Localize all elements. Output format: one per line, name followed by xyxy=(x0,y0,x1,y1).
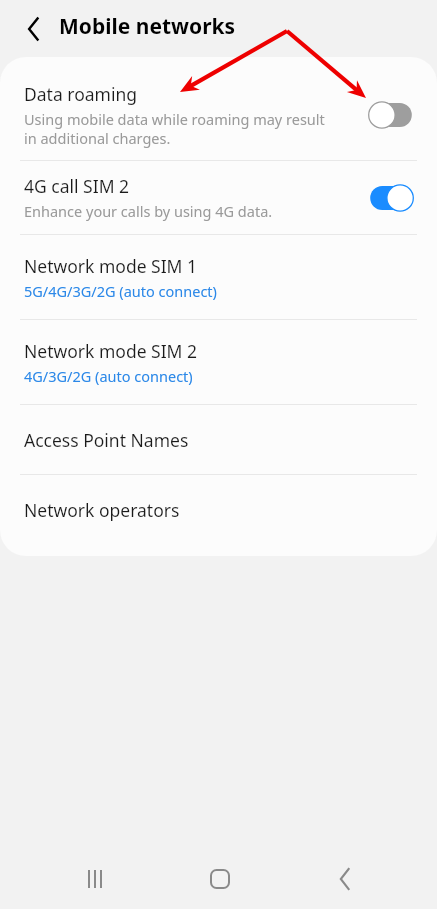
button[interactable]: Network operators xyxy=(0,475,437,544)
staticText: 4G call SIM 2 xyxy=(24,174,130,198)
button[interactable]: Back xyxy=(12,7,56,51)
staticText: 5G/4G/3G/2G (auto connect) xyxy=(24,281,217,301)
staticText: Network mode SIM 1 xyxy=(24,254,198,278)
button[interactable]: Off xyxy=(365,100,417,130)
button[interactable]: Data roaming xyxy=(0,69,437,160)
staticText: Enhance your calls by using 4G data. xyxy=(24,201,273,221)
button[interactable]: Access Point Names xyxy=(0,405,437,474)
button[interactable]: Network mode SIM 2 xyxy=(0,320,437,404)
button[interactable]: Recents xyxy=(73,857,117,901)
button[interactable]: 4G call SIM 2 xyxy=(0,161,437,234)
staticText: Mobile networks xyxy=(59,12,236,41)
staticText: Access Point Names xyxy=(24,428,189,452)
staticText: Network mode SIM 2 xyxy=(24,339,198,363)
staticText: Data roaming xyxy=(24,82,138,106)
button[interactable]: Back xyxy=(323,857,367,901)
button[interactable]: On xyxy=(365,183,417,213)
staticText: Network operators xyxy=(24,498,180,522)
staticText: 4G/3G/2G (auto connect) xyxy=(24,366,193,386)
staticText: Using mobile data while roaming may resu… xyxy=(24,109,325,148)
button[interactable]: Network mode SIM 1 xyxy=(0,235,437,319)
button[interactable]: Home xyxy=(198,857,242,901)
